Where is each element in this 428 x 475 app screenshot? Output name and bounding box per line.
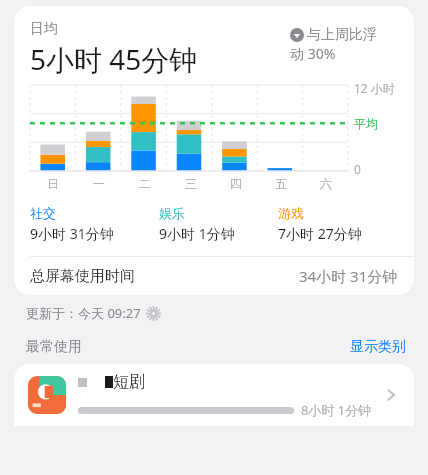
staticText: 最常使用 — [26, 338, 82, 356]
staticText: 8小时 1分钟 — [301, 401, 372, 419]
staticText: 三 — [185, 176, 197, 191]
staticText: 一 — [93, 176, 105, 191]
button[interactable]: 社交 — [30, 205, 159, 243]
staticText: 9小时 31分钟 — [30, 224, 114, 243]
staticText: 动 30% — [290, 44, 336, 63]
staticText: 34小时 31分钟 — [299, 266, 398, 286]
staticText: 显示类别 — [350, 338, 406, 356]
staticText: 二 — [139, 176, 151, 191]
staticText: 平均 — [354, 116, 378, 131]
staticText: 五 — [275, 176, 287, 191]
button[interactable]: 短剧 — [14, 364, 414, 426]
staticText: 社交 — [30, 205, 56, 221]
button[interactable]: 显示类别 — [350, 338, 406, 356]
staticText: 5小时 45分钟 — [30, 40, 198, 78]
staticText: 总屏幕使用时间 — [30, 267, 135, 286]
staticText: 日均 — [30, 20, 58, 38]
other: 查看详情 — [380, 384, 402, 406]
staticText: 更新于：今天 09:27 — [26, 304, 141, 322]
button[interactable]: 娱乐 — [159, 205, 278, 243]
button[interactable]: 总屏幕使用时间 — [14, 257, 414, 295]
staticText: 9小时 1分钟 — [159, 224, 235, 243]
staticText: 与上周比浮 — [307, 26, 377, 44]
staticText: 短剧 — [113, 372, 145, 392]
staticText: 7小时 27分钟 — [278, 224, 362, 243]
staticText: 日 — [47, 176, 59, 191]
staticText: 娱乐 — [159, 205, 185, 221]
staticText: 游戏 — [278, 205, 304, 221]
staticText: 六 — [320, 176, 332, 191]
button[interactable]: 游戏 — [278, 205, 400, 243]
staticText: 四 — [230, 176, 242, 191]
staticText: 0 — [354, 161, 361, 177]
staticText: 12 小时 — [354, 80, 395, 96]
